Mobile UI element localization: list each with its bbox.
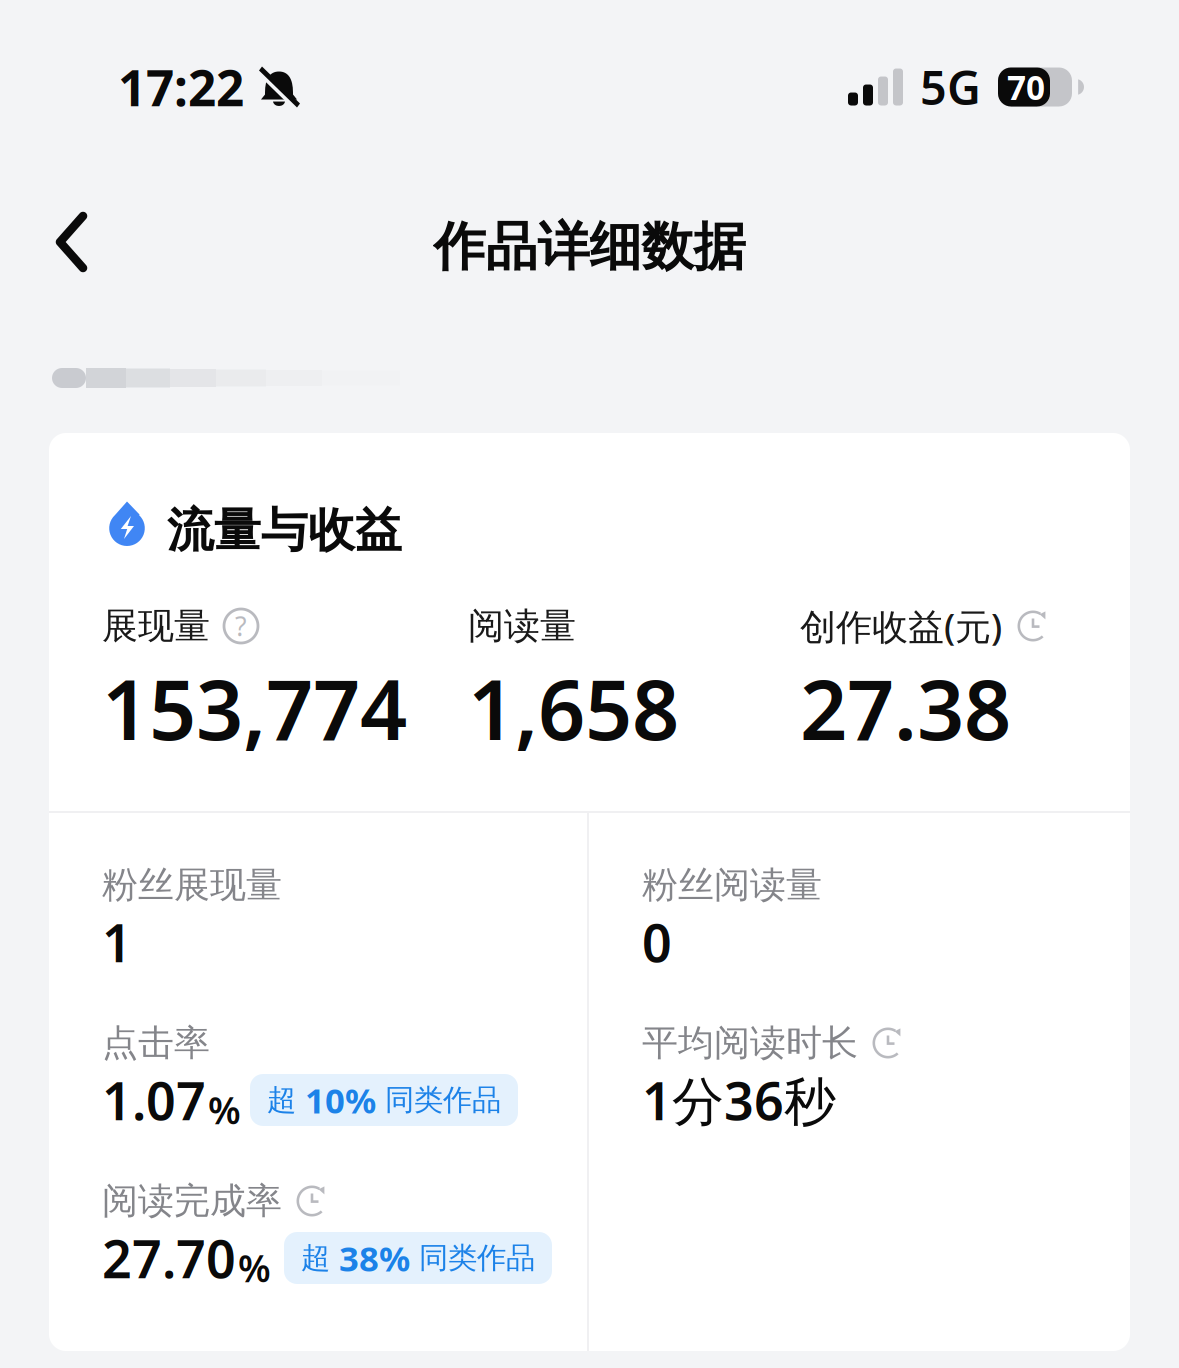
button[interactable]: Back	[0, 200, 121, 294]
staticText: 阅读量	[468, 604, 576, 648]
staticText: 粉丝展现量	[102, 863, 282, 907]
staticText: 0	[642, 907, 672, 977]
staticText: 27.70	[102, 1223, 236, 1293]
staticText: 阅读完成率	[102, 1179, 282, 1223]
staticText: 作品详细数据	[433, 215, 745, 279]
staticText: 5G	[920, 56, 981, 118]
staticText: 点击率	[102, 1021, 210, 1065]
staticText: 1分36秒	[642, 1065, 836, 1135]
staticText: %	[238, 1243, 271, 1292]
staticText: 同类作品	[376, 1082, 501, 1118]
staticText: 1	[102, 907, 132, 977]
staticText: 粉丝阅读量	[642, 863, 822, 907]
staticText: 创作收益(元)	[800, 602, 1002, 650]
staticText: %	[208, 1085, 241, 1134]
staticText: 27.38	[800, 653, 1011, 763]
staticText: 1.07	[102, 1065, 206, 1135]
staticText: 1,658	[468, 653, 679, 763]
staticText: 流量与收益	[167, 502, 402, 559]
staticText: 平均阅读时长	[642, 1021, 858, 1065]
staticText: 38%	[339, 1235, 410, 1281]
staticText: 153,774	[102, 653, 407, 763]
staticText: 超	[301, 1240, 339, 1276]
staticText: 10%	[305, 1077, 376, 1123]
staticText: 17:22	[118, 54, 244, 120]
staticText: 同类作品	[410, 1240, 535, 1276]
staticText: 超	[267, 1082, 305, 1118]
staticText: ?	[235, 608, 247, 644]
staticText: 70	[1007, 65, 1045, 109]
staticText: 展现量	[102, 604, 210, 648]
